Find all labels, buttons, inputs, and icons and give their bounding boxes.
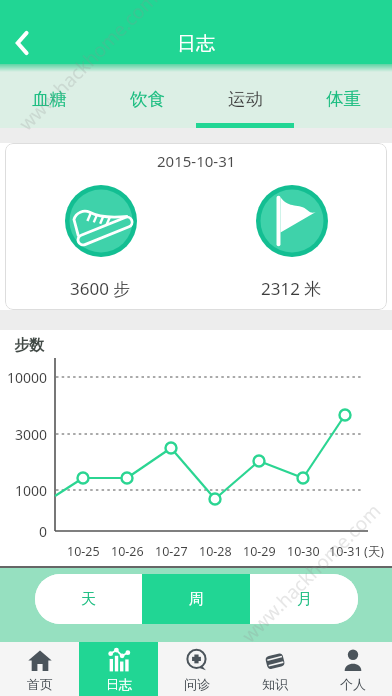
staticText: (天) <box>364 543 385 560</box>
staticText: 2312 米 <box>261 277 322 300</box>
staticText: 10-25 <box>67 543 100 560</box>
staticText: 1000 <box>15 481 48 500</box>
staticText: 日志 <box>106 676 132 692</box>
staticText: 个人 <box>340 676 366 692</box>
staticText: 10-30 <box>287 543 320 560</box>
button[interactable]: 运动 <box>196 64 294 128</box>
staticText: 10-29 <box>243 543 276 560</box>
button[interactable]: 饮食 <box>98 64 196 128</box>
button[interactable]: 3600 步 <box>5 171 196 310</box>
button[interactable]: 周 <box>142 574 250 624</box>
staticText: 日志 <box>177 32 215 56</box>
staticText: 周 <box>189 590 204 609</box>
staticText: 10-31 <box>329 543 362 560</box>
staticText: 10-27 <box>155 543 188 560</box>
staticText: 10-26 <box>111 543 144 560</box>
staticText: 0 <box>39 522 48 541</box>
staticText: 体重 <box>326 88 361 110</box>
staticText: 血糖 <box>32 88 67 110</box>
button[interactable]: 问诊 <box>158 642 236 696</box>
button[interactable]: 血糖 <box>0 64 98 128</box>
staticText: 步数 <box>14 336 44 355</box>
button[interactable]: 首页 <box>0 642 79 696</box>
staticText: 知识 <box>262 676 288 692</box>
staticText: 2015-10-31 <box>157 151 236 171</box>
staticText: 月 <box>297 590 312 609</box>
staticText: 问诊 <box>184 676 210 692</box>
staticText: 天 <box>81 590 96 609</box>
staticText: 10000 <box>7 368 48 387</box>
button[interactable]: 个人 <box>314 642 392 696</box>
staticText: 3600 步 <box>70 277 131 300</box>
button[interactable]: 体重 <box>294 64 392 128</box>
staticText: 首页 <box>27 676 53 692</box>
button[interactable]: 天 <box>35 574 142 624</box>
staticText: 10-28 <box>199 543 232 560</box>
button[interactable]: 月 <box>250 574 358 624</box>
staticText: 3000 <box>15 425 48 444</box>
button[interactable] <box>11 31 35 55</box>
button[interactable]: 2312 米 <box>196 171 387 310</box>
staticText: 运动 <box>228 88 263 110</box>
staticText: www.hackhome.com <box>236 498 386 648</box>
button[interactable]: 日志 <box>79 642 158 696</box>
staticText: 饮食 <box>130 88 165 110</box>
button[interactable]: 知识 <box>236 642 314 696</box>
staticText: www.hackhome.com <box>13 0 163 136</box>
